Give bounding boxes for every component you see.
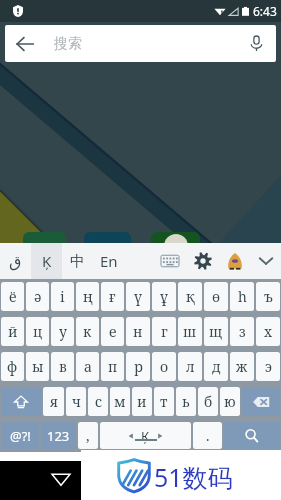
button[interactable]: ү [126,282,150,311]
button[interactable]: Hide keyboard [257,252,275,270]
staticText: ъ [264,287,273,306]
staticText: К̦ [141,427,150,445]
button[interactable]: к [76,317,99,346]
button[interactable]: т [154,387,174,416]
button[interactable]: я [43,387,64,416]
staticText: K̦ [42,251,52,271]
button[interactable]: ж [230,352,254,381]
staticText: En [100,251,118,271]
staticText: . [206,426,210,445]
staticText: т [160,392,168,411]
staticText: м [114,392,126,411]
button[interactable]: й [1,317,24,346]
button[interactable]: һ [230,282,254,311]
button[interactable]: і [51,282,74,311]
staticText: ж [236,357,248,376]
button[interactable]: д [204,352,228,381]
button[interactable]: ё [1,282,24,311]
button[interactable]: Settings [194,252,212,270]
staticText: н [133,322,143,341]
staticText: ю [224,392,236,411]
button[interactable]: э [256,352,280,381]
staticText: , [86,426,90,445]
button[interactable]: о [152,352,176,381]
button[interactable]: м [110,387,130,416]
button[interactable]: п [101,352,124,381]
staticText: ф [7,357,18,376]
staticText: ь [182,392,190,411]
staticText: ё [9,287,17,306]
staticText: ц [33,322,43,341]
button[interactable]: , [78,422,98,449]
button[interactable]: н [126,317,150,346]
button[interactable]: Back [0,461,81,500]
button[interactable]: ы [26,352,49,381]
staticText: ы [32,357,44,376]
button[interactable]: р [126,352,150,381]
button[interactable]: Keyboard layout [161,252,179,270]
button[interactable]: е [101,317,124,346]
button[interactable]: ц [26,317,49,346]
button[interactable]: Back [5,25,276,62]
button[interactable]: En [93,243,124,279]
button[interactable]: а [76,352,99,381]
button[interactable]: с [88,387,108,416]
staticText: в [59,357,67,376]
button[interactable]: Space [100,422,191,449]
button[interactable]: K̦ [31,243,62,279]
button[interactable]: ә [26,282,49,311]
staticText: ұ [160,287,169,306]
staticText: қ [186,287,195,306]
button[interactable]: ғ [101,282,124,311]
button[interactable]: ь [176,387,196,416]
staticText: з [239,322,246,341]
button[interactable]: @?! [1,422,39,449]
staticText: э [265,357,272,376]
button[interactable]: Shift [1,387,41,416]
button[interactable]: в [51,352,74,381]
button[interactable]: ق [0,243,31,279]
button[interactable]: 中 [62,243,93,279]
button[interactable]: з [230,317,254,346]
button[interactable]: щ [204,317,228,346]
button[interactable]: х [256,317,280,346]
button[interactable]: 123 [41,422,76,449]
staticText: а [84,357,92,376]
button[interactable]: Back [16,35,34,53]
staticText: л [186,357,195,376]
button[interactable]: г [152,317,176,346]
button[interactable]: қ [178,282,202,311]
staticText: е [109,322,117,341]
staticText: б [204,392,213,411]
staticText: у [59,322,67,341]
staticText: с [95,392,102,411]
button[interactable]: Emoji [226,252,244,270]
staticText: ә [34,287,42,306]
staticText: п [108,357,118,376]
button[interactable]: ө [204,282,228,311]
staticText: 搜索 [54,35,82,53]
staticText: р [134,357,143,376]
staticText: о [160,357,169,376]
button[interactable]: Backspace [242,387,280,416]
button[interactable]: ұ [152,282,176,311]
button[interactable]: ю [220,387,240,416]
button[interactable]: Search [224,422,280,449]
button[interactable]: Voice search [250,35,263,52]
button[interactable]: б [198,387,218,416]
staticText: я [50,392,58,411]
button[interactable]: . [193,422,222,449]
button[interactable]: у [51,317,74,346]
staticText: һ [238,287,247,306]
button[interactable]: ч [66,387,86,416]
button[interactable]: и [132,387,152,416]
staticText: і [60,287,65,306]
button[interactable]: ш [178,317,202,346]
button[interactable]: ъ [256,282,280,311]
button[interactable]: ф [1,352,24,381]
staticText: ө [212,287,221,306]
staticText: щ [209,322,223,341]
button[interactable]: л [178,352,202,381]
staticText: ң [83,287,93,306]
button[interactable]: ң [76,282,99,311]
